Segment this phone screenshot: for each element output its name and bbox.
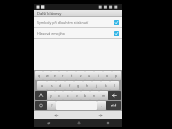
- staticText: x: [58, 93, 60, 98]
- button[interactable]: Backspace: [108, 91, 121, 100]
- button[interactable]: f: [65, 81, 74, 90]
- button[interactable]: Home: [64, 119, 93, 127]
- button[interactable]: m: [99, 91, 108, 100]
- staticText: z: [80, 73, 82, 78]
- staticText: b: [84, 93, 87, 98]
- staticText: o: [106, 73, 109, 78]
- button[interactable]: Enter: [106, 101, 121, 110]
- button[interactable]: i: [94, 71, 103, 80]
- staticText: u: [88, 73, 91, 78]
- staticText: Symboly při dlouhém stisknutí: [37, 20, 112, 25]
- button[interactable]: r: [59, 71, 67, 80]
- staticText: g: [77, 83, 80, 88]
- staticText: p: [115, 73, 118, 78]
- button[interactable]: v: [72, 91, 81, 100]
- button[interactable]: s: [47, 81, 56, 90]
- staticText: i: [98, 73, 99, 78]
- button[interactable]: Hlasová emojiho: [34, 28, 122, 38]
- button[interactable]: j: [92, 81, 101, 90]
- staticText: y: [50, 93, 52, 98]
- staticText: m: [102, 93, 106, 98]
- other: Enabled: [114, 31, 119, 36]
- button[interactable]: l: [110, 81, 119, 90]
- staticText: t: [71, 73, 73, 78]
- button[interactable]: Recent apps: [93, 119, 122, 127]
- staticText: a: [41, 83, 43, 88]
- button[interactable]: Back: [34, 119, 64, 127]
- other: Enabled: [114, 20, 119, 25]
- button[interactable]: Previous: [34, 111, 78, 119]
- button[interactable]: o: [103, 71, 112, 80]
- button[interactable]: b: [81, 91, 90, 100]
- button[interactable]: c: [63, 91, 72, 100]
- button[interactable]: Next: [78, 111, 122, 119]
- button[interactable]: x: [55, 91, 63, 100]
- button[interactable]: d: [56, 81, 65, 90]
- button[interactable]: z: [76, 71, 85, 80]
- staticText: Další klávesy: [37, 11, 62, 16]
- button[interactable]: t: [67, 71, 76, 80]
- button[interactable]: u: [85, 71, 94, 80]
- button[interactable]: Symbols: [35, 101, 47, 110]
- staticText: f: [69, 83, 71, 88]
- button[interactable]: Shift: [35, 91, 47, 100]
- button[interactable]: g: [74, 81, 83, 90]
- staticText: s: [51, 83, 53, 88]
- button[interactable]: k: [101, 81, 110, 90]
- staticText: n: [93, 93, 96, 98]
- button[interactable]: Symboly při dlouhém stisknutí: [34, 17, 122, 27]
- staticText: ?: [51, 103, 53, 108]
- staticText: q: [38, 73, 41, 78]
- staticText: l: [114, 83, 115, 88]
- staticText: v: [76, 93, 78, 98]
- button[interactable]: w: [43, 71, 51, 80]
- button[interactable]: .: [97, 101, 106, 110]
- staticText: j: [96, 83, 97, 88]
- staticText: h: [86, 83, 89, 88]
- button[interactable]: e: [51, 71, 59, 80]
- staticText: d: [59, 83, 62, 88]
- button[interactable]: y: [47, 91, 55, 100]
- button[interactable]: ?: [47, 101, 56, 110]
- button[interactable]: n: [90, 91, 99, 100]
- button[interactable]: p: [112, 71, 121, 80]
- staticText: .: [101, 103, 102, 108]
- staticText: e: [54, 73, 56, 78]
- staticText: c: [67, 93, 69, 98]
- button[interactable]: a: [37, 81, 47, 90]
- button[interactable]: q: [35, 71, 43, 80]
- staticText: Hlasová emojiho: [37, 31, 112, 36]
- staticText: w: [46, 73, 49, 78]
- button[interactable]: h: [83, 81, 92, 90]
- staticText: k: [105, 83, 107, 88]
- staticText: r: [62, 73, 64, 78]
